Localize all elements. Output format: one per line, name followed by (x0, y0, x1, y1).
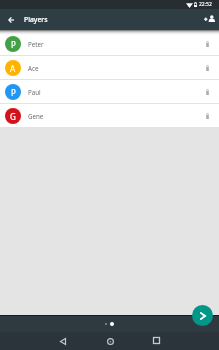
staticText: Paul (28, 88, 41, 96)
button[interactable]: Back (0, 9, 21, 30)
button[interactable]: Add player (199, 9, 219, 30)
staticText: Players (24, 15, 48, 24)
button[interactable]: P (0, 80, 219, 104)
button[interactable]: Delete (200, 109, 214, 123)
button[interactable]: Delete (200, 85, 214, 99)
staticText: G (10, 111, 16, 122)
staticText: P (11, 87, 16, 98)
button[interactable]: Next (192, 305, 213, 326)
button[interactable]: Delete (200, 61, 214, 75)
staticText: Peter (28, 40, 44, 48)
staticText: 22:52 (199, 1, 212, 8)
button[interactable]: Back (55, 333, 71, 349)
staticText: Gene (28, 112, 44, 120)
button[interactable]: Delete (200, 37, 214, 51)
button[interactable]: P (0, 32, 219, 56)
button[interactable]: Home (102, 333, 118, 349)
button[interactable]: A (0, 56, 219, 80)
staticText: A (10, 63, 16, 74)
button[interactable]: G (0, 104, 219, 128)
staticText: Ace (28, 64, 39, 72)
staticText: P (11, 39, 16, 50)
button[interactable]: Recents (148, 332, 164, 348)
